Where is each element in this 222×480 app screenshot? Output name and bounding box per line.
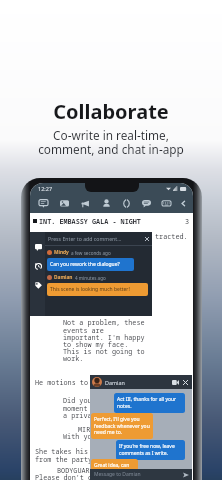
staticText: 12:27 [38, 185, 53, 192]
button[interactable]: Back [176, 194, 190, 213]
button[interactable]: Video call [171, 378, 180, 386]
staticText: Press Enter to add comment... [48, 235, 122, 242]
staticText: tracted. [155, 232, 188, 241]
staticText: If you're free now, leave comments as I … [119, 443, 182, 457]
button[interactable]: This scene is looking much better! [47, 283, 148, 296]
button[interactable]: Close chat [181, 378, 189, 386]
staticText: Damian [105, 379, 125, 386]
button[interactable]: Scene [54, 194, 75, 213]
button[interactable]: Comment [33, 194, 54, 213]
staticText: Damian [54, 274, 73, 281]
staticText: Did you have a moment for a private word… [63, 396, 125, 420]
staticText: 3 [185, 217, 190, 226]
button[interactable]: Send [182, 471, 189, 478]
staticText: Act III, thanks for all your notes. [117, 396, 182, 410]
button[interactable]: Character [96, 194, 116, 213]
staticText: Please don't go far. [35, 473, 117, 480]
button[interactable]: If you're free now, leave comments as I … [116, 440, 185, 460]
staticText: Not a problem, these events are importan… [63, 318, 145, 363]
button[interactable]: Can you rework the dialogue? [47, 258, 134, 271]
button[interactable]: Perfect, I'll give you feedback whenever… [91, 413, 153, 439]
button[interactable]: Close [143, 235, 150, 242]
staticText: With you? Always. [63, 432, 133, 441]
button[interactable]: Keyboard [156, 194, 176, 213]
button[interactable]: Act III, thanks for all your notes. [114, 393, 185, 413]
staticText: 4 minutes ago [75, 275, 106, 281]
button[interactable]: History [32, 260, 44, 272]
staticText: This scene is looking much better! [50, 286, 130, 293]
staticText: Message to Damian [94, 471, 141, 478]
staticText: Collaborate [53, 98, 169, 125]
button[interactable]: Great idea, can do! [91, 459, 138, 479]
staticText: She takes his arm and steers him from th… [35, 447, 166, 464]
staticText: Mindy [54, 249, 69, 256]
staticText: Can you rework the dialogue? [50, 261, 120, 268]
staticText: Great idea, can do! [94, 462, 135, 476]
staticText: BODYGUARD [57, 466, 94, 475]
staticText: INT. EMBASSY GALA - NIGHT [39, 217, 141, 226]
button[interactable]: Comments [32, 241, 44, 253]
staticText: Perfect, I'll give you feedback whenever… [94, 416, 150, 436]
staticText: Co-write in real-time, comment, and chat… [38, 127, 184, 158]
staticText: He motions to the bodyguard. [35, 378, 150, 387]
button[interactable]: Action [75, 194, 96, 213]
staticText: a few seconds ago [71, 250, 111, 256]
button[interactable]: Parenthetical [116, 194, 136, 213]
staticText: MIRA [78, 425, 95, 434]
button[interactable]: Tags [32, 279, 44, 291]
button[interactable]: Dialogue [136, 194, 156, 213]
